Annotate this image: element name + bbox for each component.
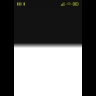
other: Status icons — [61, 2, 79, 6]
